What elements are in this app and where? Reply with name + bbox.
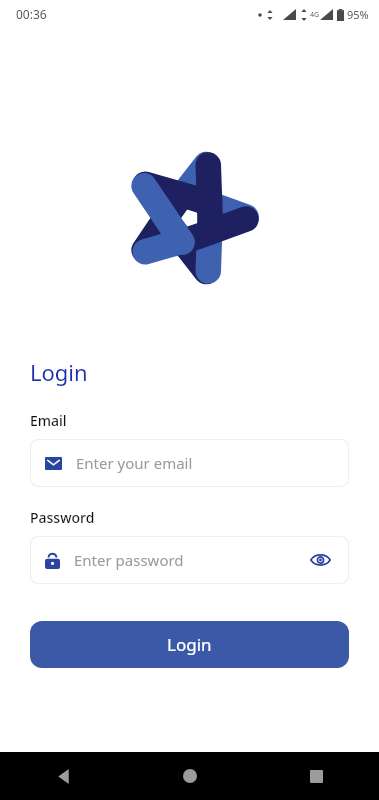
button[interactable]: Home bbox=[127, 752, 253, 800]
staticText: Enter password bbox=[74, 550, 184, 570]
staticText: 95% bbox=[347, 7, 369, 22]
staticText: Login bbox=[30, 357, 88, 387]
button[interactable]: Enter your email bbox=[31, 440, 348, 486]
button[interactable]: Login bbox=[30, 621, 349, 668]
staticText: 4G bbox=[310, 10, 320, 20]
staticText: Password bbox=[30, 508, 95, 527]
button[interactable]: Show password bbox=[306, 546, 334, 574]
staticText: Enter your email bbox=[76, 453, 193, 473]
button[interactable]: Back bbox=[0, 752, 127, 800]
button[interactable]: Enter password bbox=[31, 537, 348, 583]
button[interactable]: Recent apps bbox=[253, 752, 379, 800]
staticText: Email bbox=[30, 411, 67, 430]
staticText: Login bbox=[167, 633, 212, 656]
staticText: 00:36 bbox=[16, 6, 47, 22]
